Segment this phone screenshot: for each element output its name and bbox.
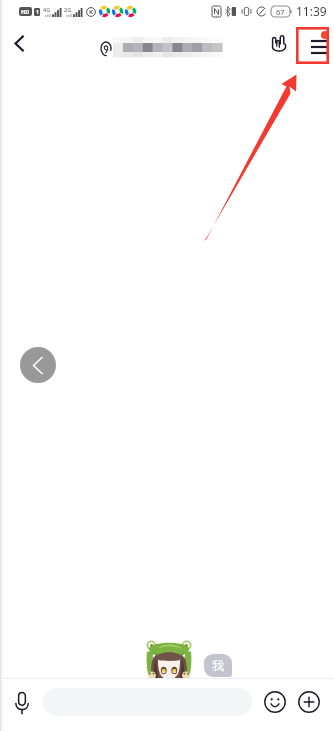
staticText: 1 (36, 9, 39, 16)
staticText: 67 (276, 7, 285, 17)
button[interactable]: Emoji (262, 689, 288, 715)
button[interactable]: Rock gesture (264, 28, 294, 58)
staticText: 我 (212, 658, 224, 673)
button[interactable]: Voice message (8, 689, 36, 717)
staticText: 11:39 (296, 3, 327, 19)
button[interactable]: 我 (204, 654, 232, 677)
button[interactable]: Back (4, 28, 34, 58)
staticText: HD (21, 8, 30, 15)
button[interactable]: More options (296, 689, 322, 715)
staticText: 2G (64, 6, 72, 13)
button[interactable]: Collapse (20, 347, 56, 383)
button[interactable]: Menu (300, 25, 330, 61)
staticText: 4G (43, 6, 51, 13)
staticText: K (89, 8, 93, 16)
